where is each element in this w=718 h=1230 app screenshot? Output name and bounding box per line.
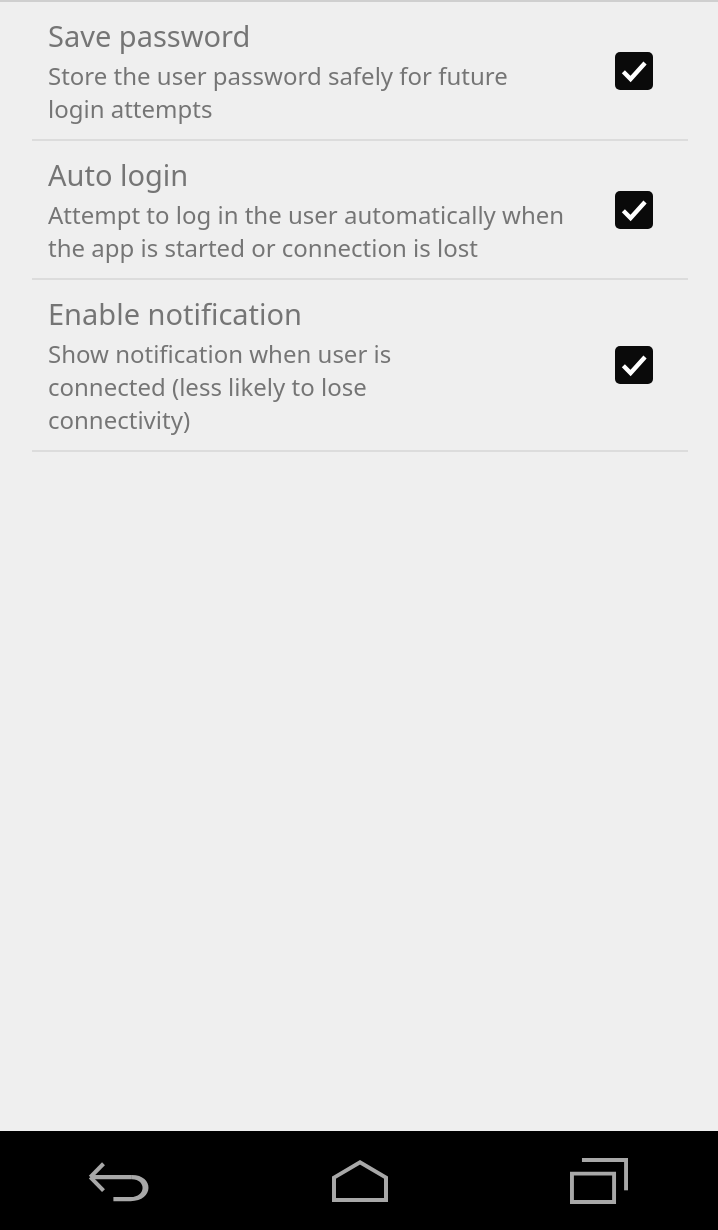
button[interactable]: Auto login checkbox, checked (606, 182, 662, 238)
staticText: Auto login (48, 155, 189, 194)
staticText: Enable notification (48, 294, 303, 333)
button[interactable]: Enable notification (0, 280, 718, 450)
button[interactable]: Enable notification checkbox, checked (606, 337, 662, 393)
button[interactable]: Back (0, 1131, 240, 1230)
button[interactable]: Recent apps (479, 1131, 718, 1230)
staticText: Store the user password safely for futur… (48, 59, 548, 125)
staticText: Attempt to log in the user automatically… (48, 198, 568, 264)
button[interactable]: Auto login (0, 141, 718, 278)
staticText: Show notification when user is connected… (48, 337, 448, 436)
button[interactable]: Home (240, 1131, 479, 1230)
staticText: Save password (48, 16, 251, 55)
button[interactable]: Save password checkbox, checked (606, 43, 662, 99)
button[interactable]: Save password (0, 2, 718, 139)
